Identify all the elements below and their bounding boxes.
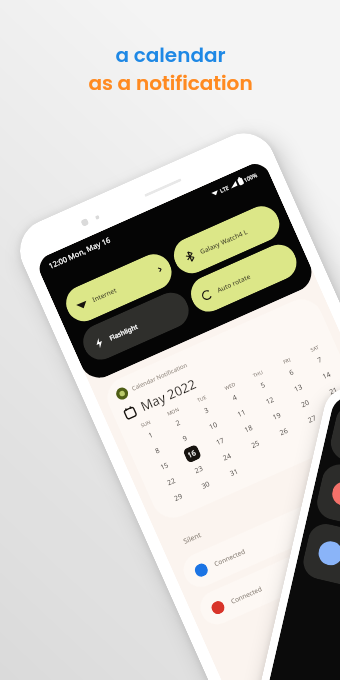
staticText: Galaxy Watch4 L: [198, 227, 249, 256]
staticText: WED: [224, 381, 237, 392]
button[interactable]: [300, 520, 340, 608]
staticText: 5: [259, 380, 268, 391]
staticText: 2: [174, 418, 183, 429]
staticText: 27: [306, 413, 319, 426]
staticText: Calendar Notification: [131, 361, 189, 393]
staticText: 13: [293, 382, 305, 395]
staticText: 24: [221, 451, 234, 464]
staticText: 23: [193, 463, 205, 476]
staticText: THU: [252, 368, 265, 379]
staticText: 8: [154, 445, 162, 456]
staticText: Flashlight: [108, 322, 140, 342]
staticText: SUN: [140, 418, 152, 429]
staticText: 11: [236, 407, 248, 420]
staticText: SAT: [310, 344, 321, 354]
button[interactable]: [314, 461, 340, 549]
staticText: 22: [166, 476, 178, 488]
staticText: Connected: [229, 584, 263, 606]
staticText: 9: [181, 433, 190, 444]
button[interactable]: Auto rotate: [185, 239, 302, 317]
staticText: 12: [264, 394, 277, 407]
staticText: 20: [299, 397, 312, 410]
staticText: 31: [228, 466, 241, 479]
staticText: 10: [208, 420, 220, 432]
staticText: 12:00 Mon, May 16: [47, 234, 112, 271]
staticText: 28: [335, 400, 340, 413]
staticText: May 2022: [138, 375, 199, 415]
button[interactable]: Connected: [178, 467, 340, 592]
button[interactable]: Connected: [195, 504, 340, 630]
staticText: 3: [203, 405, 211, 416]
staticText: 26: [278, 425, 290, 438]
staticText: 17: [215, 435, 227, 448]
staticText: 7: [316, 354, 324, 366]
button[interactable]: Galaxy Watch4 L: [168, 200, 285, 279]
staticText: 4: [231, 392, 239, 404]
staticText: 30: [200, 479, 212, 492]
staticText: FRI: [282, 356, 292, 366]
staticText: Internet: [91, 285, 118, 304]
staticText: 29: [173, 491, 185, 504]
staticText: 100%: [242, 171, 259, 183]
staticText: LTE: [219, 184, 230, 194]
staticText: 19: [271, 410, 283, 423]
staticText: Connected: [213, 547, 246, 568]
button[interactable]: Calendar Notification: [100, 292, 340, 525]
staticText: 14: [321, 369, 333, 382]
staticText: as a notification: [88, 69, 253, 97]
staticText: 1: [147, 430, 155, 441]
staticText: TUE: [196, 394, 208, 404]
button[interactable]: [327, 401, 340, 489]
button[interactable]: Internet: [60, 248, 177, 327]
staticText: 21: [328, 385, 340, 398]
staticText: 6: [287, 367, 296, 378]
button[interactable]: Flashlight: [77, 287, 194, 365]
staticText: 18: [243, 423, 255, 435]
staticText: Auto rotate: [216, 272, 252, 294]
staticText: a calendar: [115, 41, 226, 69]
staticText: 15: [159, 460, 171, 473]
staticText: MON: [166, 406, 181, 418]
staticText: 25: [250, 438, 262, 451]
staticText: 16: [186, 448, 199, 461]
staticText: Silent: [182, 530, 203, 547]
